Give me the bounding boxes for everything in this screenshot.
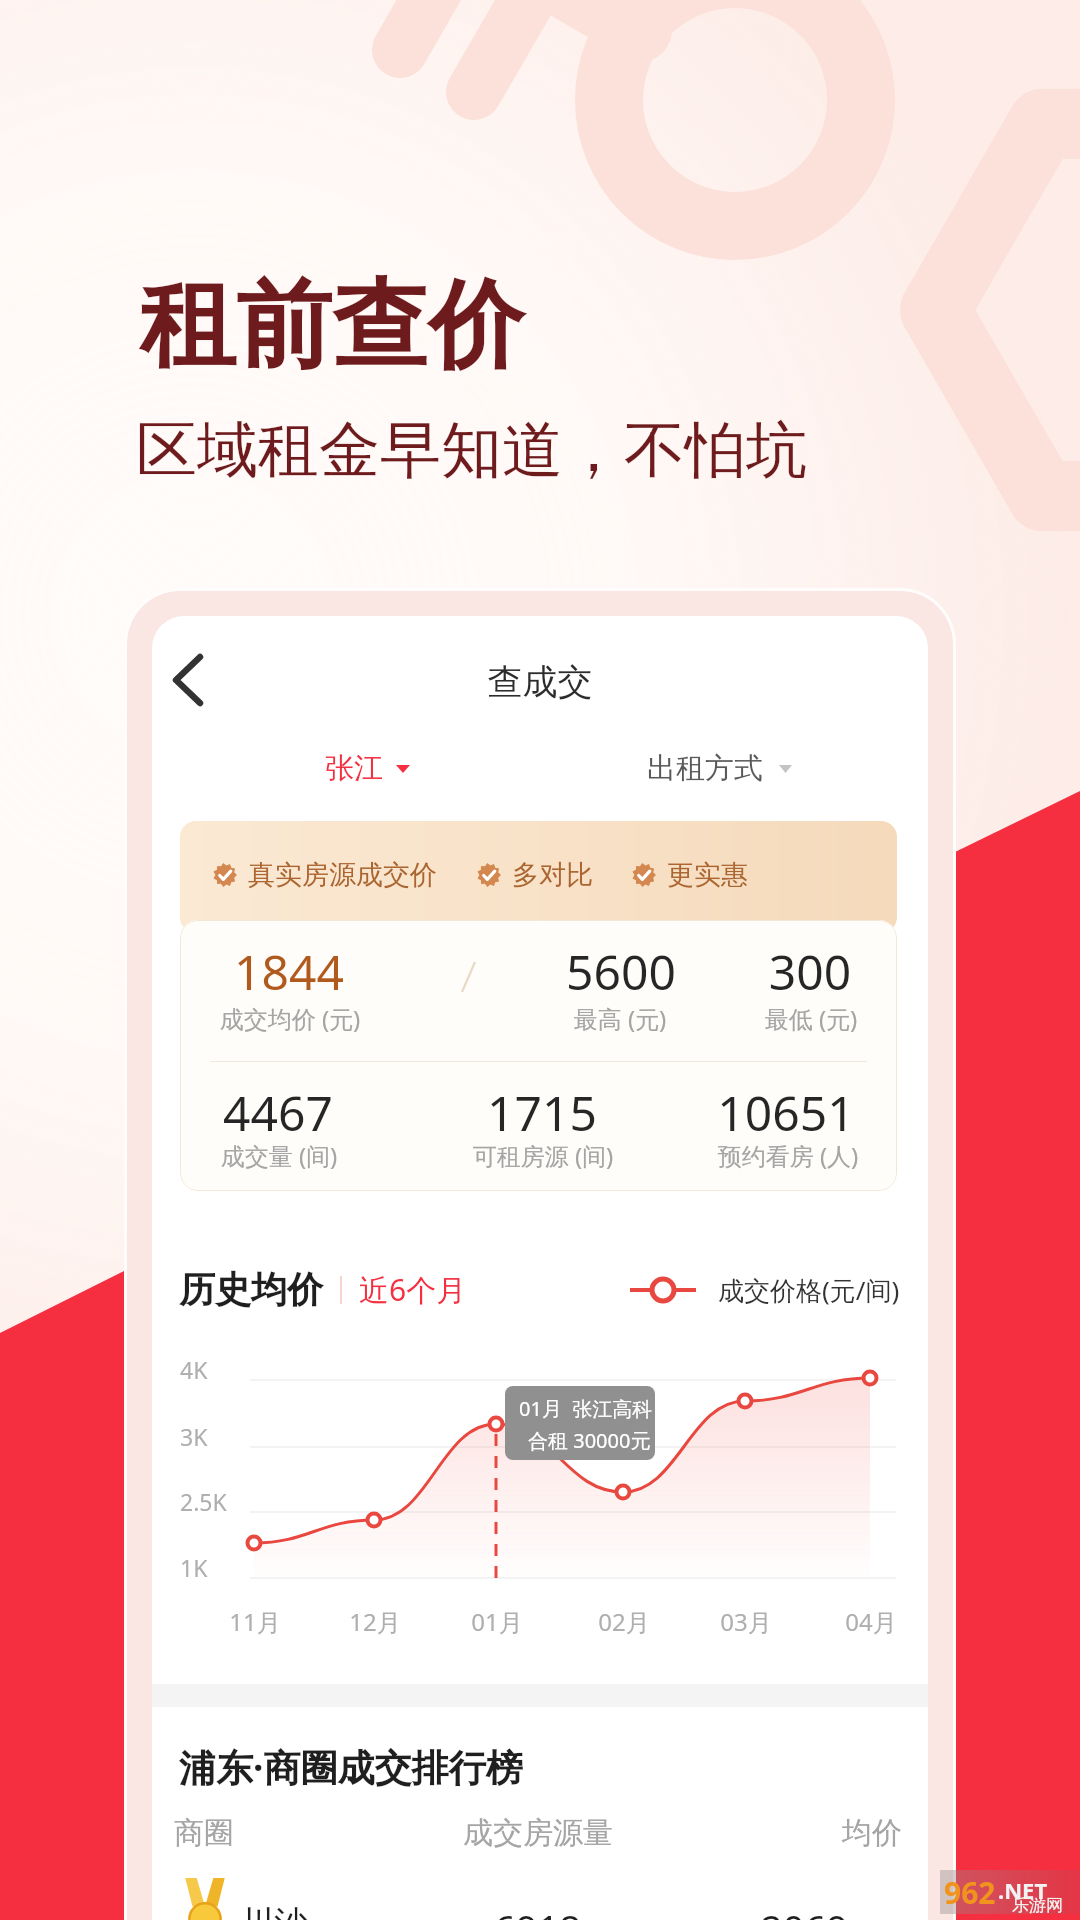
staticText: 5600 <box>511 939 731 1004</box>
staticText: 12月 <box>349 1605 401 1638</box>
staticText: 合租 30000元 <box>528 1427 651 1454</box>
staticText: 300 <box>700 939 897 1004</box>
staticText: 2.5K <box>180 1486 227 1517</box>
staticText: 4K <box>180 1354 208 1385</box>
staticText: 01月 <box>471 1605 523 1638</box>
staticText: 均价 <box>678 1814 902 1852</box>
button[interactable]: 出租方式 <box>647 750 792 787</box>
staticText: 01月 张江高科 <box>519 1395 653 1422</box>
staticText: 可租房源 (间) <box>433 1139 653 1172</box>
staticText: 11月 <box>229 1605 281 1638</box>
staticText: 川沙 <box>240 1902 308 1920</box>
staticText: 多对比 <box>512 858 593 892</box>
button[interactable]: 川沙 6918间 2069元/间 <box>152 1871 928 1920</box>
staticText: 租前查价 <box>140 266 524 387</box>
staticText: 预约看房 (人) <box>678 1139 897 1172</box>
staticText: 1844 <box>180 939 399 1004</box>
button[interactable]: 张江 <box>325 750 410 787</box>
staticText: 查成交 <box>152 660 928 704</box>
staticText: 1715 <box>432 1080 652 1145</box>
staticText: 更实惠 <box>667 858 748 892</box>
staticText: 4467 <box>180 1080 388 1145</box>
staticText: 真实房源成交价 <box>248 858 437 892</box>
staticText: 1K <box>180 1552 208 1583</box>
staticText: 02月 <box>598 1605 650 1638</box>
staticText: 成交价格(元/间) <box>718 1272 900 1308</box>
staticText: 最高 (元) <box>510 1002 730 1035</box>
staticText: 区域租金早知道，不怕坑 <box>136 412 807 489</box>
staticText: 2069 <box>761 1902 848 1920</box>
staticText: 商圈 <box>174 1814 398 1852</box>
staticText: 10651 <box>676 1080 896 1145</box>
staticText: 6918 <box>494 1902 581 1920</box>
staticText: 张江 <box>325 750 383 787</box>
staticText: .NET <box>998 1875 1048 1905</box>
staticText: 最低 (元) <box>701 1002 897 1035</box>
staticText: 历史均价 <box>179 1267 323 1312</box>
staticText: 3K <box>180 1421 208 1452</box>
staticText: 近6个月 <box>359 1269 467 1310</box>
staticText: 962 <box>944 1872 996 1913</box>
staticText: 乐游网 <box>1012 1895 1063 1916</box>
staticText: 成交均价 (元) <box>180 1002 400 1035</box>
staticText: 04月 <box>845 1605 897 1638</box>
button[interactable]: Back <box>156 648 220 712</box>
staticText: 成交量 (间) <box>180 1139 389 1172</box>
staticText: 03月 <box>720 1605 772 1638</box>
staticText: 出租方式 <box>647 750 763 787</box>
staticText: 成交房源量 <box>398 1814 678 1852</box>
staticText: 浦东·商圈成交排行榜 <box>179 1741 523 1792</box>
